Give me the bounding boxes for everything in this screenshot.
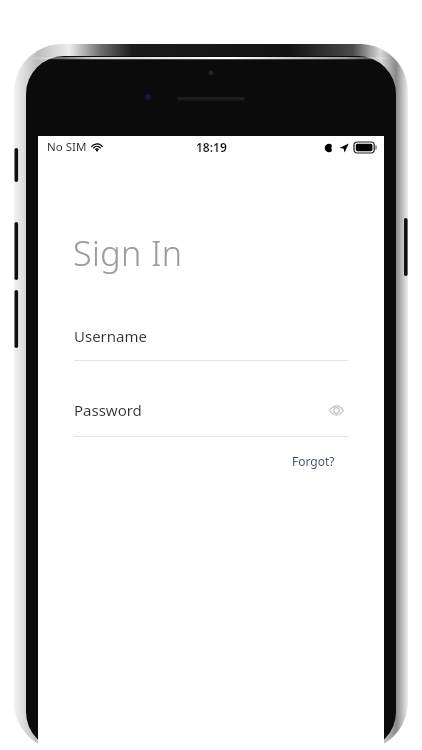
staticText: Sign In [73, 230, 183, 276]
staticText: 18:19 [196, 139, 227, 155]
staticText: Forgot? [292, 453, 335, 469]
staticText: Username [74, 326, 348, 346]
staticText: Password [74, 400, 324, 420]
button[interactable]: Forgot? [290, 451, 337, 471]
staticText: No SIM [47, 139, 87, 155]
button[interactable]: Show password [324, 398, 348, 422]
